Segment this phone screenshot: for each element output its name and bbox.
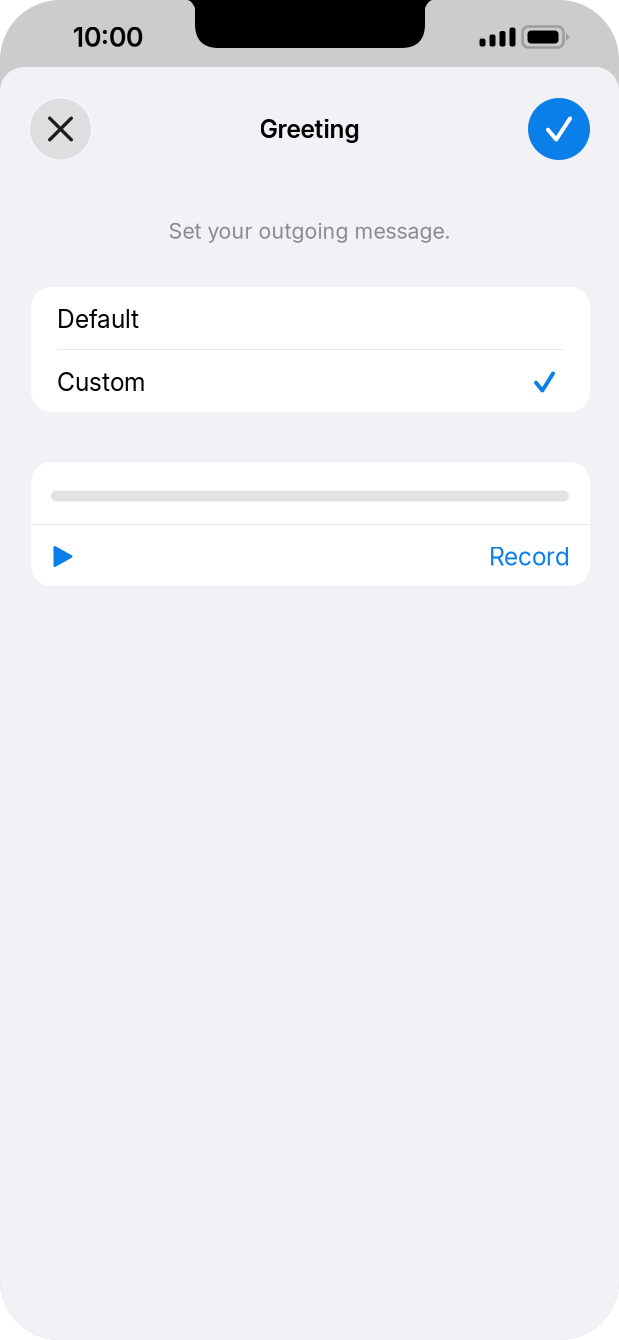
staticText: Greeting [259,114,359,144]
button[interactable]: Close [28,97,92,161]
button[interactable]: Play [31,525,93,586]
button[interactable]: Record [468,525,590,586]
button[interactable]: Done [528,98,590,160]
staticText: Record [489,542,570,571]
staticText: 10:00 [73,21,143,53]
button[interactable]: Custom [31,350,590,412]
staticText: Set your outgoing message. [168,218,450,244]
staticText: Default [57,304,139,334]
staticText: Custom [57,367,145,397]
button[interactable]: Default [31,287,590,349]
